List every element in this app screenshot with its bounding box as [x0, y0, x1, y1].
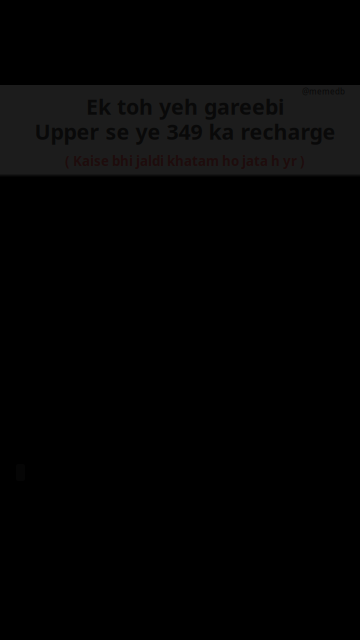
staticText: Upper se ye 349 ka recharge: [34, 117, 335, 146]
button[interactable]: Ek toh yeh gareebi: [0, 85, 360, 174]
staticText: ( Kaise bhi jaldi khatam ho jata h yr ): [65, 152, 305, 170]
staticText: @memedb: [302, 86, 345, 97]
staticText: Ek toh yeh gareebi: [86, 92, 284, 121]
